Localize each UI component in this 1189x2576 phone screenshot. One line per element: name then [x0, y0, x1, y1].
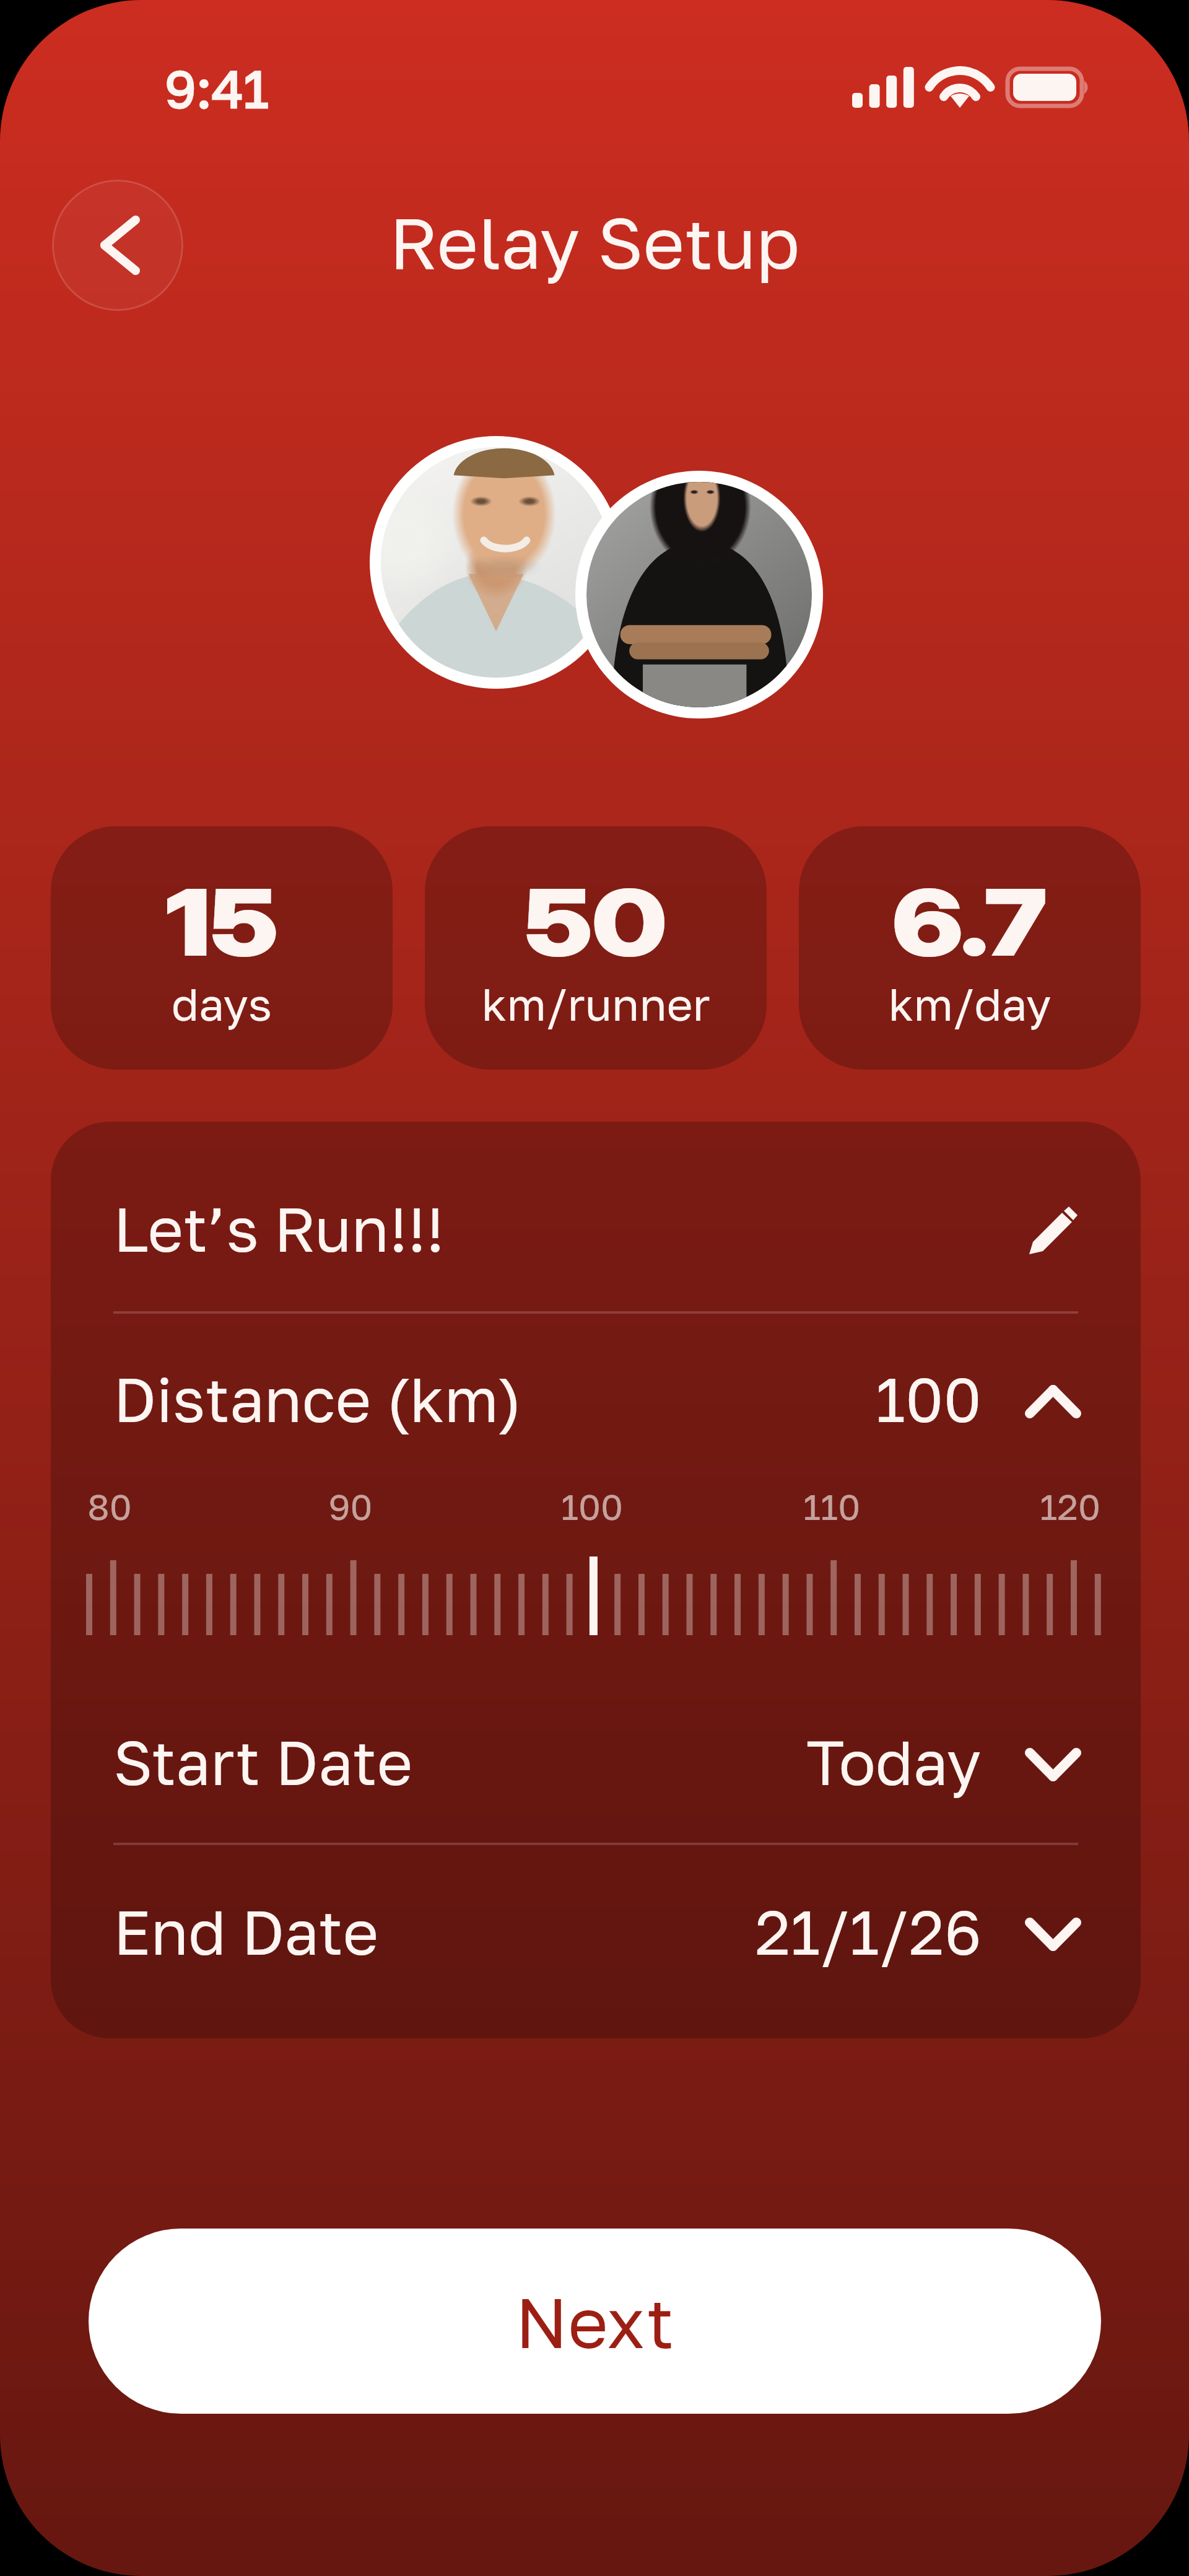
- staticText: 120: [1008, 1485, 1132, 1528]
- button[interactable]: Distance (km): [51, 1346, 1141, 1451]
- button[interactable]: 6.7: [799, 826, 1141, 1070]
- staticText: days: [51, 977, 393, 1030]
- staticText: 110: [770, 1485, 894, 1528]
- staticText: km/day: [799, 977, 1141, 1030]
- staticText: Start Date: [113, 1725, 413, 1799]
- button[interactable]: 15: [51, 826, 393, 1070]
- button[interactable]: 50: [425, 826, 767, 1070]
- staticText: 9:41: [165, 57, 269, 120]
- staticText: 50: [425, 867, 767, 978]
- staticText: 100: [530, 1485, 654, 1528]
- button[interactable]: Start Date: [51, 1709, 1141, 1814]
- staticText: 90: [289, 1485, 412, 1528]
- staticText: Next: [515, 2280, 674, 2363]
- button[interactable]: End Date: [51, 1879, 1141, 1984]
- staticText: 80: [51, 1485, 172, 1528]
- staticText: 6.7: [799, 867, 1141, 978]
- staticText: Distance (km): [113, 1362, 522, 1436]
- staticText: 15: [51, 867, 393, 978]
- staticText: km/runner: [425, 977, 767, 1030]
- button[interactable]: Runner one: [370, 436, 622, 689]
- button[interactable]: Back: [52, 180, 183, 311]
- button[interactable]: Next: [89, 2229, 1101, 2414]
- staticText: Today: [806, 1725, 982, 1799]
- button[interactable]: Let’s Run!!!: [51, 1176, 1141, 1281]
- button[interactable]: Runner two: [575, 471, 823, 718]
- staticText: Relay Setup: [0, 199, 1189, 284]
- staticText: 100: [876, 1362, 982, 1436]
- staticText: 21/1/26: [755, 1895, 982, 1968]
- staticText: Let’s Run!!!: [113, 1192, 445, 1265]
- staticText: End Date: [113, 1895, 379, 1968]
